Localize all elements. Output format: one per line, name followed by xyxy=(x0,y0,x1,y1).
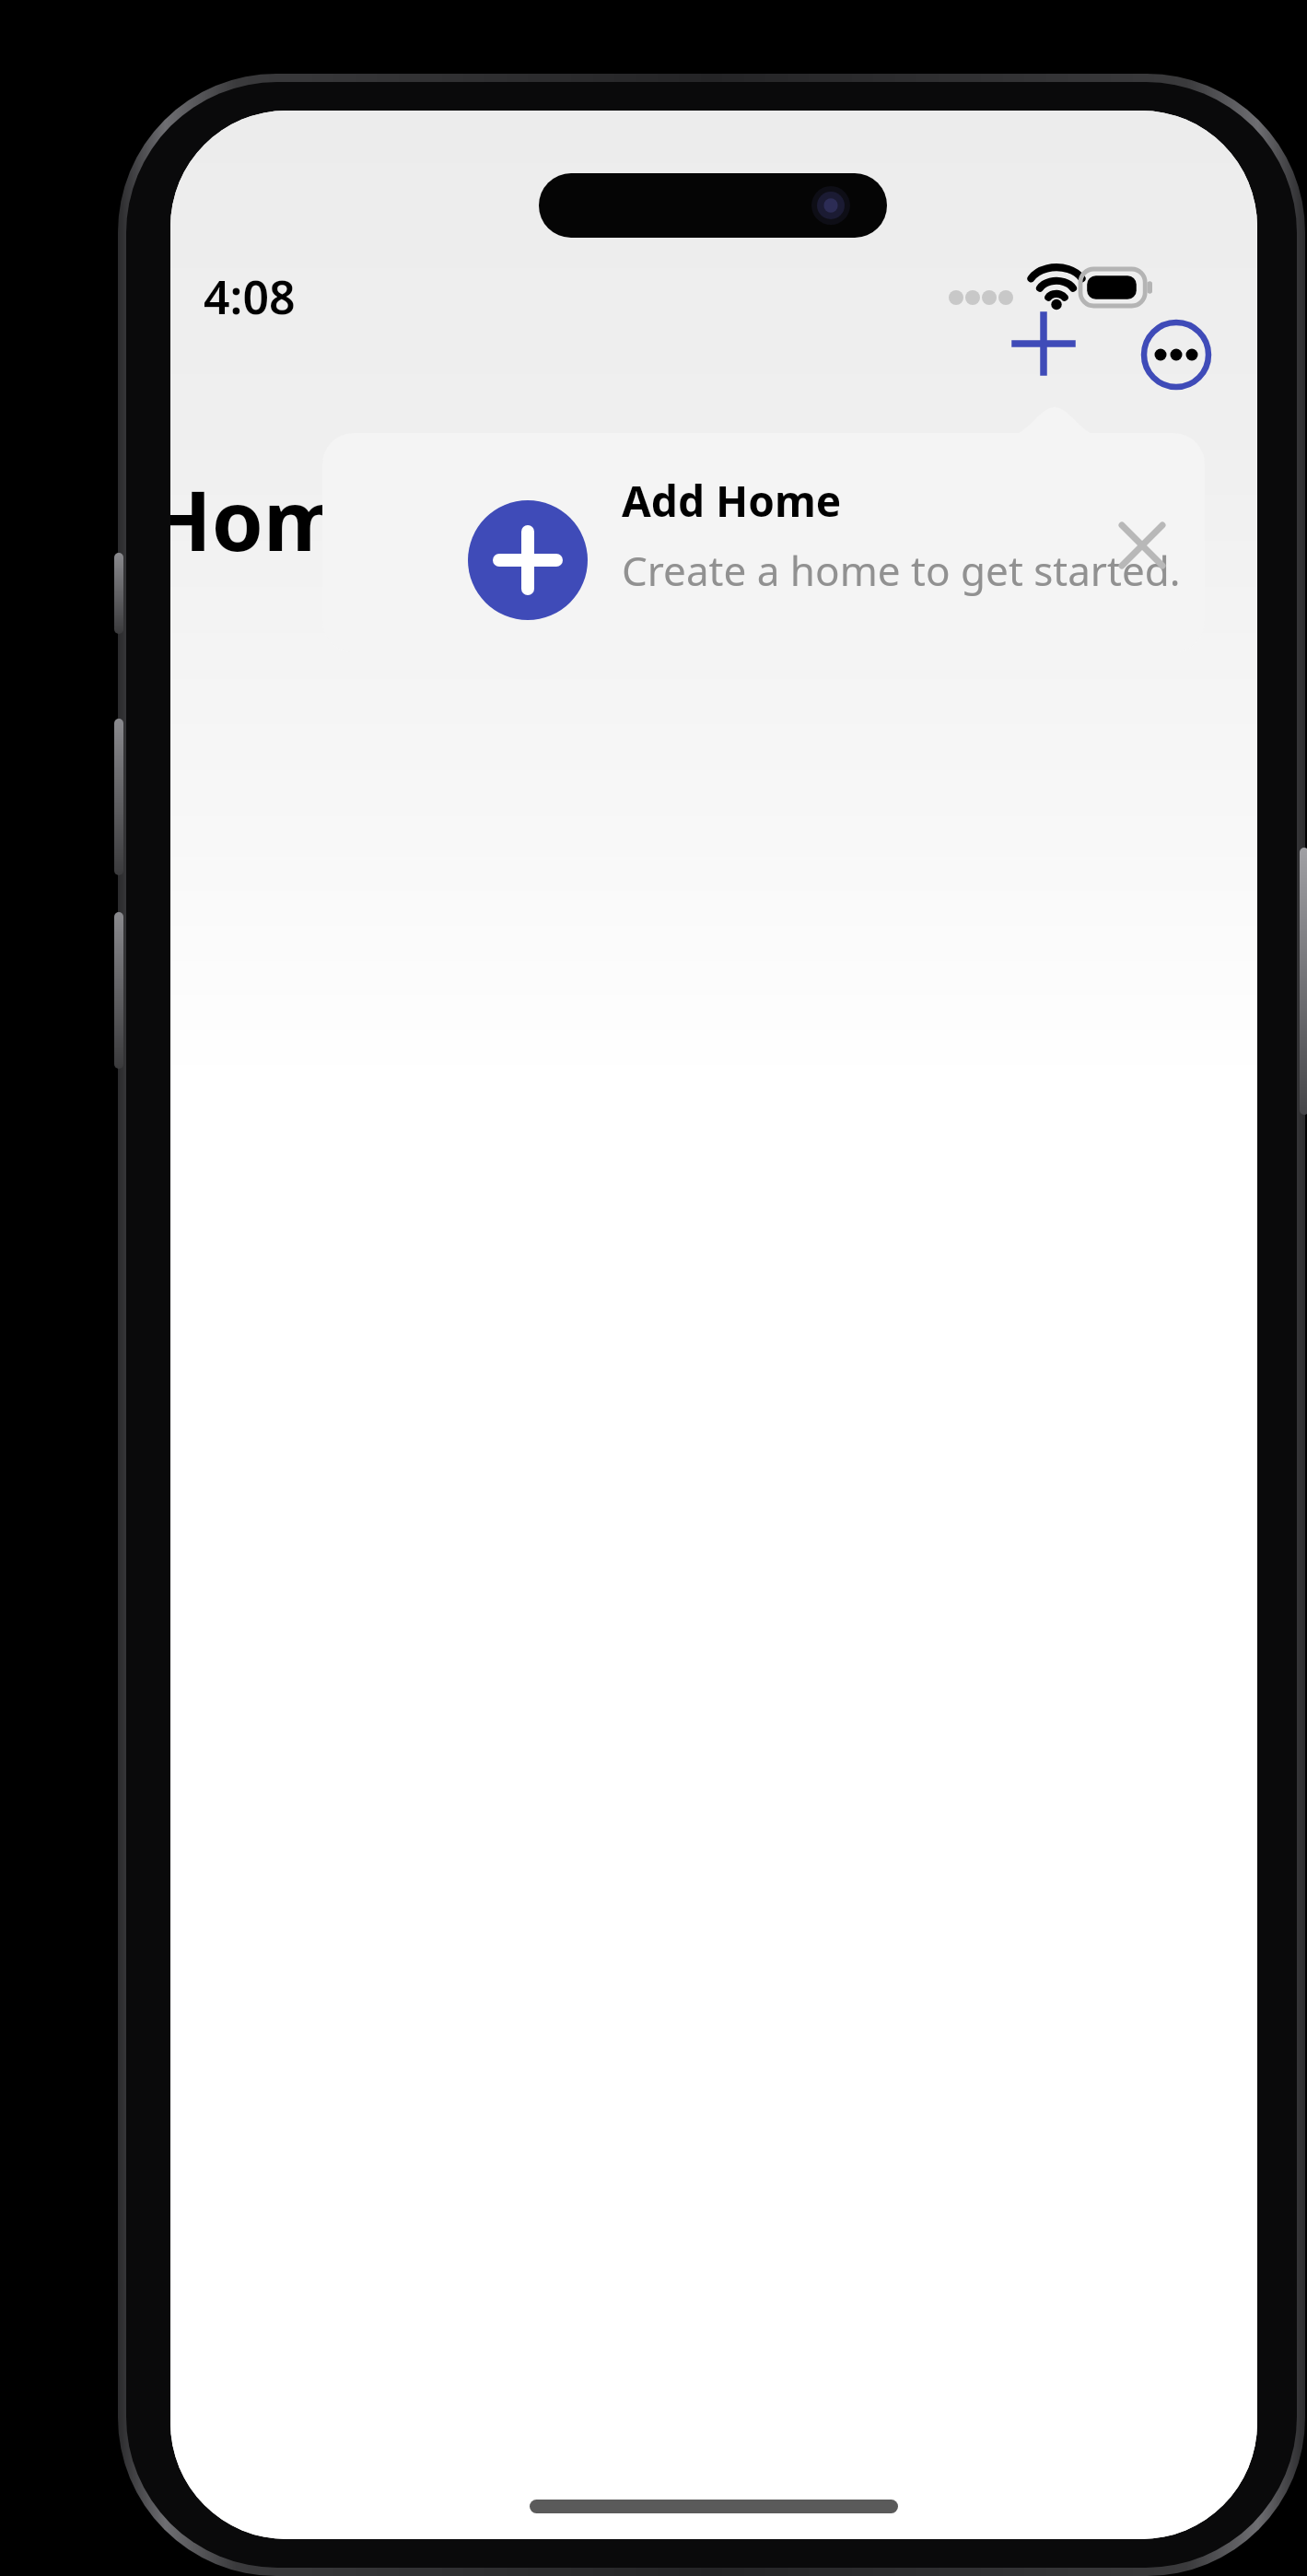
staticText: 4:08 xyxy=(204,265,296,328)
button[interactable]: Add Home xyxy=(322,433,1205,652)
button[interactable]: Add xyxy=(988,288,1099,399)
staticText: Home xyxy=(170,463,394,576)
button[interactable]: More options xyxy=(1121,299,1231,410)
staticText: Add Home xyxy=(622,472,842,530)
staticText: Create a home to get started. xyxy=(622,543,1181,598)
button[interactable]: Dismiss xyxy=(1096,499,1188,591)
